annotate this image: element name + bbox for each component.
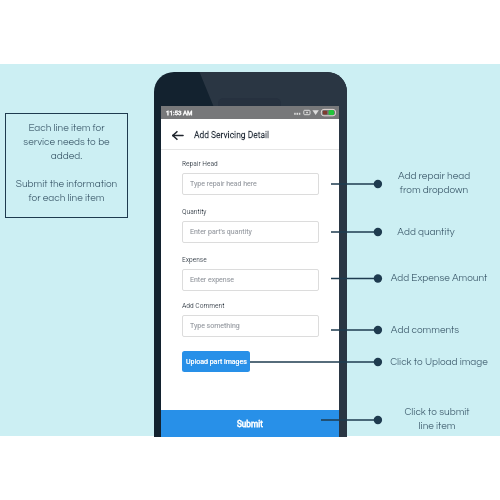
staticText: Add Servicing Detail xyxy=(194,130,270,140)
staticText: Type repair head here xyxy=(190,180,257,188)
button[interactable]: Each line item for service needs to be a… xyxy=(5,113,128,218)
staticText: Enter part's quantity xyxy=(190,228,252,236)
staticText: 11:53 AM xyxy=(166,109,193,116)
staticText: Click to submit line item xyxy=(377,407,497,431)
staticText: Expense xyxy=(182,256,207,264)
staticText: Add repair head from dropdown xyxy=(374,171,494,195)
staticText: Repair Head xyxy=(182,160,218,168)
staticText: Add Comment xyxy=(182,302,225,310)
button[interactable]: Enter expense xyxy=(182,269,319,291)
staticText: Add quantity xyxy=(366,227,486,237)
button[interactable]: Enter part's quantity xyxy=(182,221,319,243)
staticText: Enter expense xyxy=(190,276,234,284)
staticText: Type something xyxy=(190,322,240,330)
button[interactable]: Back xyxy=(167,125,187,145)
button[interactable]: Type repair head here xyxy=(182,173,319,195)
staticText: Add comments xyxy=(365,325,485,335)
staticText: Quantity xyxy=(182,208,207,216)
button[interactable]: Add quantity xyxy=(366,227,486,237)
staticText: Add Expense Amount xyxy=(379,273,499,283)
button[interactable]: Submit xyxy=(161,410,339,437)
button[interactable]: Add repair head from dropdown xyxy=(374,171,494,195)
staticText: Each line item for service needs to be a… xyxy=(5,123,128,204)
button[interactable]: Type something xyxy=(182,315,319,337)
staticText: Click to Upload image xyxy=(379,357,499,367)
button[interactable]: Add comments xyxy=(365,325,485,335)
button[interactable]: Add Expense Amount xyxy=(379,273,499,283)
staticText: Submit xyxy=(237,419,263,429)
button[interactable]: Click to Upload image xyxy=(379,357,499,367)
button[interactable]: Upload part images xyxy=(182,351,250,372)
button[interactable]: Click to submit line item xyxy=(377,407,497,431)
staticText: Upload part images xyxy=(186,358,247,366)
